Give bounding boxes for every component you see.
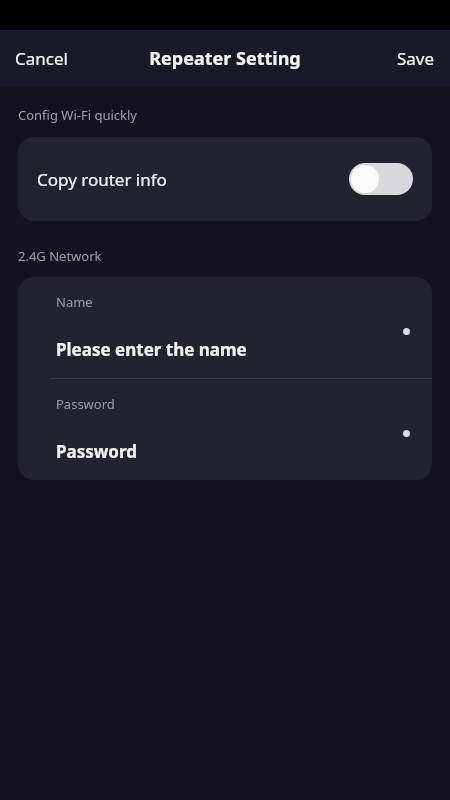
staticText: Config Wi-Fi quickly: [18, 106, 137, 124]
button[interactable]: Save: [382, 39, 450, 78]
staticText: Repeater Setting: [149, 46, 301, 71]
staticText: Please enter the name: [56, 338, 247, 361]
button[interactable]: Password: [18, 379, 432, 480]
staticText: Copy router info: [37, 168, 349, 191]
staticText: Name: [56, 293, 93, 311]
staticText: Password: [56, 440, 137, 463]
staticText: 2.4G Network: [18, 247, 102, 265]
staticText: Cancel: [15, 47, 68, 70]
button[interactable]: Cancel: [0, 39, 83, 78]
button[interactable]: Copy router info: [18, 137, 432, 221]
button[interactable]: Copy router info toggle: [349, 163, 413, 195]
staticText: Password: [56, 395, 115, 413]
staticText: Save: [397, 47, 435, 70]
button[interactable]: Name: [18, 277, 432, 378]
